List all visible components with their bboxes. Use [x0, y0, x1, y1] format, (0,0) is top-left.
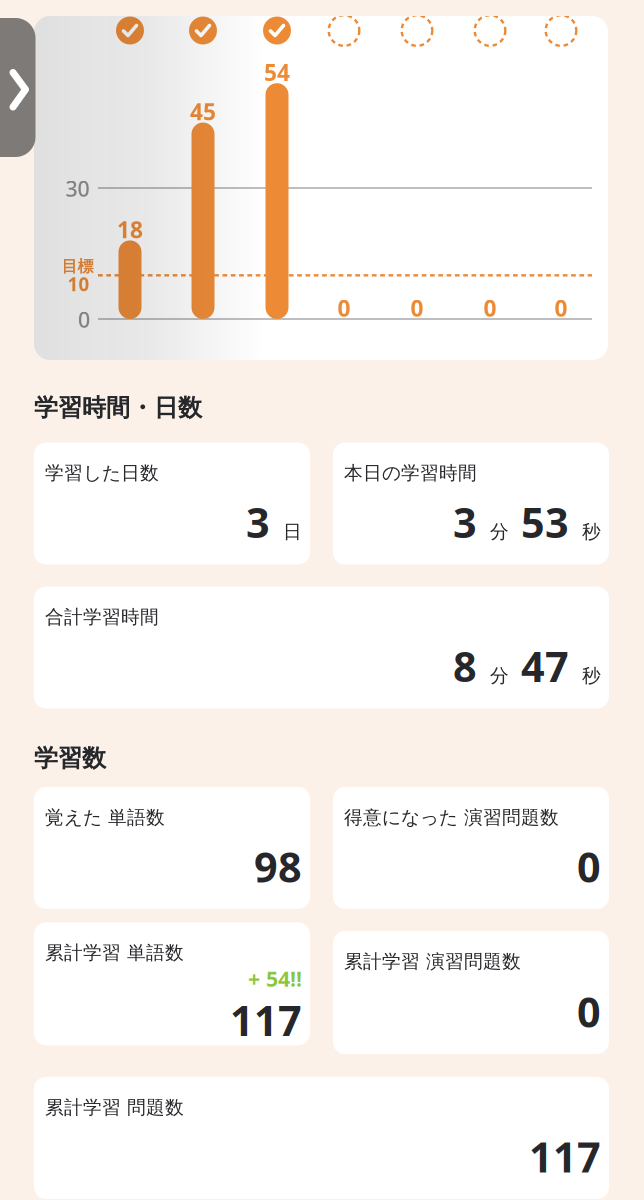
staticText: 117: [529, 1129, 601, 1184]
staticText: 累計学習 演習問題数: [344, 950, 521, 973]
staticText: 8: [453, 639, 477, 693]
staticText: 98: [254, 839, 302, 894]
staticText: 30: [65, 174, 89, 203]
staticText: 45: [190, 96, 216, 126]
staticText: 47: [521, 639, 569, 693]
staticText: 分: [490, 520, 509, 543]
staticText: 覚えた 単語数: [45, 806, 165, 829]
button[interactable]: 累計学習 問題数: [34, 1077, 609, 1199]
button[interactable]: Open menu: [0, 18, 35, 157]
staticText: 53: [521, 495, 569, 549]
staticText: + 54!!: [248, 964, 302, 993]
staticText: 学習時間・日数: [34, 393, 202, 422]
staticText: 0: [78, 305, 90, 334]
staticText: 学習数: [34, 743, 106, 773]
staticText: 合計学習時間: [45, 605, 159, 628]
button[interactable]: 覚えた 単語数: [34, 787, 310, 909]
staticText: 3: [453, 495, 477, 549]
staticText: 3: [246, 495, 270, 549]
button[interactable]: 累計学習 演習問題数: [333, 931, 609, 1054]
staticText: 分: [490, 664, 509, 687]
button[interactable]: 合計学習時間: [34, 586, 609, 708]
staticText: 累計学習 問題数: [45, 1096, 184, 1119]
staticText: 0: [577, 984, 601, 1039]
staticText: 0: [554, 293, 567, 323]
staticText: 目標: [61, 257, 93, 276]
staticText: 10: [67, 272, 89, 296]
staticText: 117: [230, 993, 302, 1047]
button[interactable]: 累計学習 単語数: [34, 931, 310, 1054]
staticText: 累計学習 単語数: [45, 941, 184, 964]
staticText: 秒: [582, 520, 601, 543]
staticText: 0: [483, 293, 496, 323]
staticText: 0: [337, 293, 350, 323]
staticText: 0: [410, 293, 423, 323]
staticText: 本日の学習時間: [344, 461, 477, 484]
staticText: 得意になった 演習問題数: [344, 806, 559, 829]
staticText: 18: [117, 214, 143, 244]
staticText: 秒: [582, 664, 601, 687]
staticText: 学習した日数: [45, 461, 159, 484]
staticText: 54: [264, 57, 290, 87]
staticText: 0: [577, 839, 601, 894]
button[interactable]: 得意になった 演習問題数: [333, 787, 609, 909]
staticText: 日: [283, 520, 302, 543]
button[interactable]: 本日の学習時間: [333, 442, 609, 564]
button[interactable]: 学習した日数: [34, 442, 310, 564]
